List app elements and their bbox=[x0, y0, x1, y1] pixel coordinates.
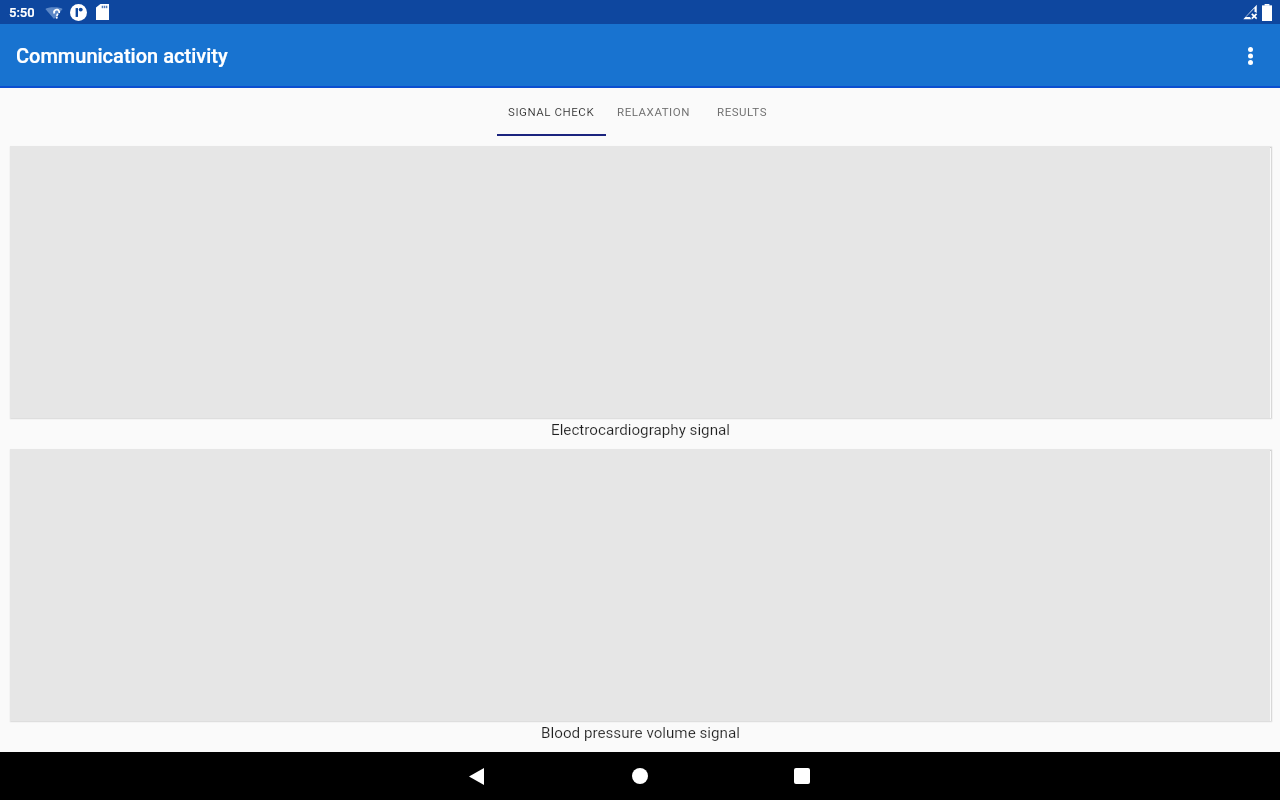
button[interactable]: Home bbox=[616, 752, 664, 800]
button[interactable]: RELAXATION bbox=[606, 88, 702, 146]
staticText: Electrocardiography signal bbox=[551, 421, 730, 439]
staticText: 5:50 bbox=[9, 5, 35, 20]
staticText: RESULTS bbox=[717, 105, 768, 118]
staticText: SIGNAL CHECK bbox=[508, 105, 595, 118]
button[interactable]: More options bbox=[1226, 32, 1274, 80]
button[interactable]: RESULTS bbox=[702, 88, 783, 146]
button[interactable]: Back bbox=[452, 752, 500, 800]
button[interactable]: SIGNAL CHECK bbox=[497, 88, 606, 146]
staticText: RELAXATION bbox=[617, 105, 691, 118]
staticText: Communication activity bbox=[16, 44, 228, 67]
staticText: Blood pressure volume signal bbox=[541, 724, 740, 742]
button[interactable]: Recent apps bbox=[778, 752, 826, 800]
